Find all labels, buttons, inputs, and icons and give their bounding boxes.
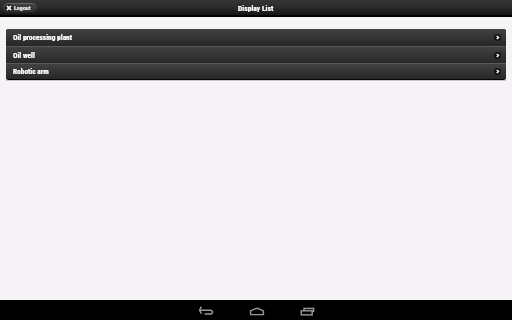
staticText: Oil processing plant [13, 33, 73, 42]
button[interactable]: Back [188, 300, 223, 320]
button[interactable]: Home [239, 300, 274, 320]
staticText: Logout [14, 4, 31, 11]
button[interactable]: Recent apps [290, 300, 325, 320]
staticText: Robotic arm [13, 67, 49, 76]
staticText: Display List [238, 4, 274, 13]
button[interactable]: Robotic arm [6, 64, 506, 79]
button[interactable]: Logout [3, 3, 37, 13]
staticText: Oil well [13, 51, 35, 60]
button[interactable]: Oil processing plant [6, 29, 506, 46]
button[interactable]: Oil well [6, 47, 506, 63]
